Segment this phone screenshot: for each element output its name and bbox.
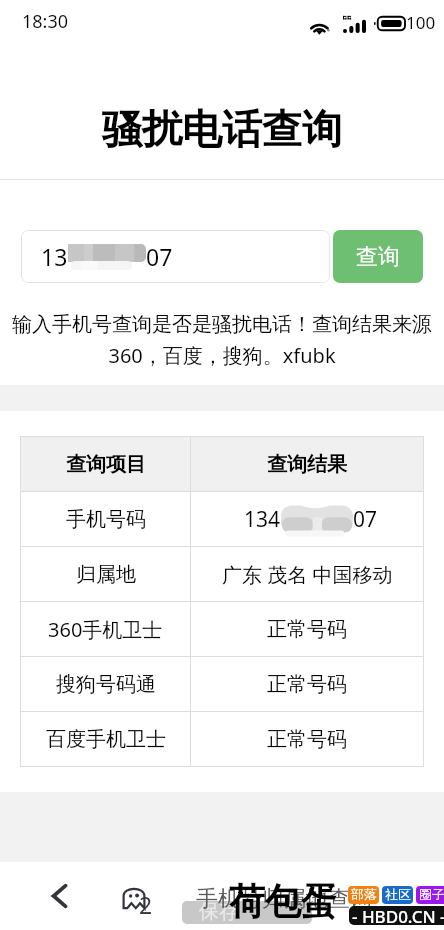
staticText: 圈子 (419, 886, 444, 902)
staticText: 查询结果 (267, 452, 347, 477)
staticText: 保存 (199, 901, 239, 922)
staticText: 13 (41, 241, 68, 272)
staticText: 骚扰电话查询 (102, 104, 342, 154)
staticText: 手机号码 (66, 507, 146, 532)
staticText: 部落 (351, 886, 377, 902)
staticText: - HBD0.CN - (352, 906, 444, 924)
button[interactable]: Comments (120, 862, 186, 930)
staticText: 360手机卫士 (48, 616, 163, 643)
staticText: 正常号码 (267, 672, 347, 697)
staticText: 07 (146, 241, 173, 272)
button[interactable]: 查询 (333, 230, 423, 283)
staticText: 正常号码 (267, 617, 347, 642)
button[interactable]: 13 (21, 230, 330, 283)
staticText: 正常号码 (267, 727, 347, 752)
staticText: 查询项目 (66, 452, 146, 477)
staticText: 18:30 (22, 9, 69, 34)
button[interactable]: Back (0, 862, 120, 930)
staticText: 07 (353, 505, 378, 534)
staticText: 输入手机号查询是否是骚扰电话！查询结果来源 360，百度，搜狗。xfubk (0, 312, 444, 369)
staticText: 2 (139, 889, 153, 920)
staticText: 134 (244, 505, 281, 534)
staticText: 广东 茂名 中国移动 (222, 561, 393, 588)
staticText: 搜狗号码通 (56, 672, 156, 697)
staticText: 手机号归属地查询 (196, 885, 372, 913)
staticText: 归属地 (76, 562, 136, 587)
staticText: 查询 (356, 243, 400, 271)
staticText: 社区 (385, 886, 411, 902)
staticText: 百度手机卫士 (46, 727, 166, 752)
staticText: 荷包蛋 (229, 879, 337, 924)
button[interactable]: 保存 (182, 901, 312, 924)
button[interactable]: 手机号归属地查询 (186, 862, 444, 930)
staticText: 100 (406, 11, 436, 34)
